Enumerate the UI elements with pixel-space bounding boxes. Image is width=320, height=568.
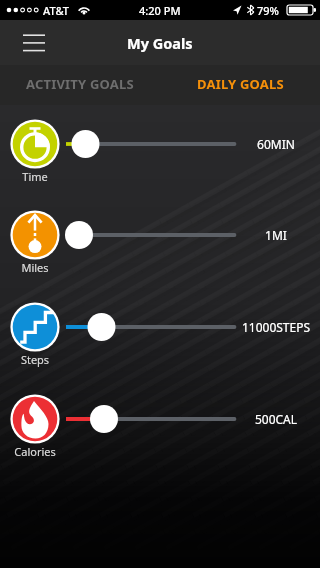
staticText: 1MI	[226, 227, 320, 245]
staticText: AT&T	[43, 3, 70, 18]
staticText: Time	[5, 169, 65, 185]
button[interactable]: Time	[0, 98, 320, 190]
staticText: DAILY GOALS	[197, 75, 284, 93]
staticText: 79%	[257, 3, 279, 18]
staticText: Steps	[5, 352, 65, 368]
button[interactable]: Miles	[0, 189, 320, 281]
button[interactable]: ACTIVITY GOALS	[0, 65, 160, 105]
button[interactable]: Menu	[11, 24, 56, 61]
staticText: My Goals	[127, 33, 193, 53]
staticText: 11000STEPS	[226, 319, 320, 337]
button[interactable]: Calories	[0, 373, 320, 465]
staticText: ACTIVITY GOALS	[26, 75, 134, 93]
staticText: 4:20 PM	[139, 3, 181, 18]
staticText: Miles	[5, 260, 65, 276]
button[interactable]: Steps	[0, 281, 320, 373]
staticText: 500CAL	[226, 411, 320, 429]
staticText: 60MIN	[226, 136, 320, 154]
button[interactable]: DAILY GOALS	[160, 65, 320, 105]
staticText: Calories	[5, 444, 65, 460]
